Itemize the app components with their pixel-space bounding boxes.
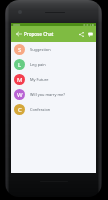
staticText: Leg pain [30, 62, 46, 67]
staticText: Suggestion [30, 47, 51, 52]
staticText: Propose Chat [24, 31, 54, 37]
staticText: M [17, 76, 23, 84]
button[interactable]: Back [13, 26, 24, 42]
button[interactable]: L [11, 57, 96, 72]
staticText: C [18, 106, 22, 114]
staticText: Will you marry me? [30, 92, 65, 97]
button[interactable]: S [11, 42, 96, 57]
staticText: W [17, 91, 23, 99]
staticText: My Future [30, 77, 49, 82]
staticText: L [18, 61, 22, 69]
button[interactable]: M [11, 72, 96, 87]
button[interactable]: W [11, 87, 96, 102]
staticText: Confession [30, 107, 51, 112]
button[interactable]: C [11, 102, 96, 117]
button[interactable]: Share [76, 26, 87, 42]
button[interactable]: Messages [85, 26, 96, 42]
staticText: S [18, 46, 22, 54]
